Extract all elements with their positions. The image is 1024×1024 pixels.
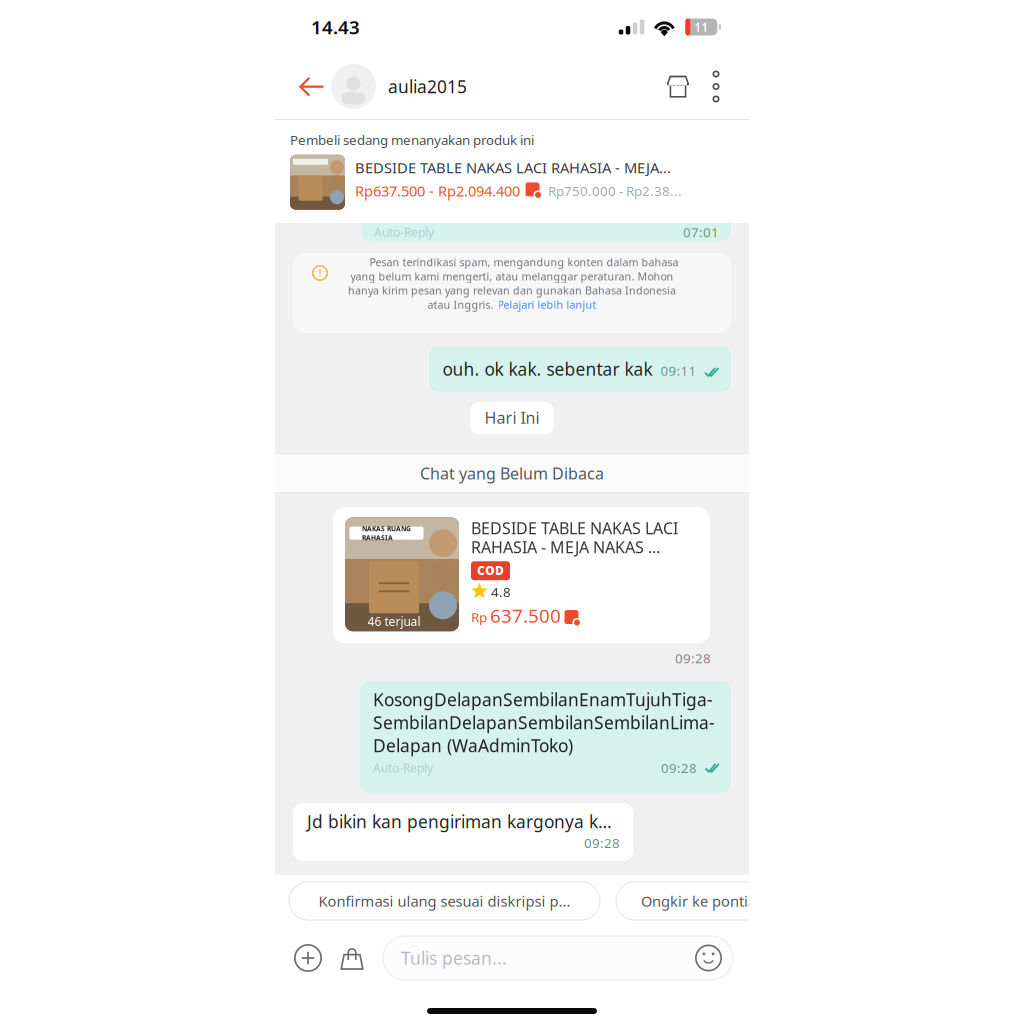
staticText: COD [477, 562, 504, 578]
staticText: ouh. ok kak. sebentar kak [442, 357, 652, 380]
staticText: Hari Ini [484, 407, 539, 428]
staticText: Tulis pesan... [401, 946, 507, 969]
staticText: BEDSIDE TABLE NAKAS LACI RAHASIA - MEJA.… [355, 158, 671, 177]
staticText: 09:28 [675, 649, 711, 667]
button[interactable]: Ongkir ke pontianak [616, 882, 806, 920]
staticText: Auto-Reply [373, 760, 433, 776]
staticText: Jd bikin kan pengiriman kargonya kak? [307, 810, 620, 833]
button[interactable]: Pembeli sedang menanyakan produk ini [275, 120, 749, 223]
staticText: Pembeli sedang menanyakan produk ini [290, 131, 534, 149]
button[interactable]: More options [699, 64, 733, 108]
button[interactable]: Tulis pesan... [383, 936, 733, 980]
button[interactable]: NAKAS RUANG RAHASIA [333, 507, 710, 643]
staticText: Konfirmasi ulang sesuai diskripsi p... [318, 891, 570, 911]
button[interactable]: aulia2015 [331, 61, 467, 111]
staticText: BEDSIDE TABLE NAKAS LACI RAHASIA - MEJA … [471, 517, 678, 558]
staticText: Rp [471, 608, 487, 626]
staticText: KosongDelapanSembilanEnamTujuhTigaSembil… [373, 688, 715, 757]
button[interactable]: Add attachment [291, 938, 325, 978]
staticText: Ongkir ke pontianak [641, 891, 781, 911]
staticText: 11 [694, 19, 708, 35]
staticText: 07:01 [683, 223, 719, 241]
staticText: aulia2015 [388, 75, 467, 98]
staticText: 4.8 [491, 583, 511, 601]
staticText: hanya kirim pesan yang relevan dan gunak… [348, 283, 676, 297]
staticText: atau Inggris. [427, 297, 493, 312]
staticText: 14.43 [311, 15, 360, 39]
staticText: 09:28 [584, 834, 620, 852]
staticText: 09:28 [661, 759, 697, 777]
staticText: Rp750.000 - Rp2.38... [548, 182, 682, 200]
staticText: Pelajari lebih lanjut [497, 297, 596, 312]
button[interactable]: Konfirmasi ulang sesuai diskripsi p... [289, 882, 600, 920]
staticText: yang belum kami mengerti, atau melanggar… [350, 269, 673, 283]
staticText: Pesan terindikasi spam, mengandung konte… [345, 255, 678, 269]
button[interactable]: Shop [657, 64, 699, 108]
staticText: NAKAS RUANG RAHASIA [362, 524, 411, 542]
staticText: 637.500 [490, 603, 561, 628]
staticText: Chat yang Belum Dibaca [420, 463, 604, 484]
staticText: 09:11 [660, 362, 696, 379]
button[interactable]: Back [291, 64, 331, 108]
button[interactable]: Products [335, 938, 369, 978]
staticText: Rp637.500 - Rp2.094.400 [355, 181, 520, 201]
staticText: Auto-Reply [374, 224, 434, 240]
staticText: 46 terjual [367, 613, 420, 629]
